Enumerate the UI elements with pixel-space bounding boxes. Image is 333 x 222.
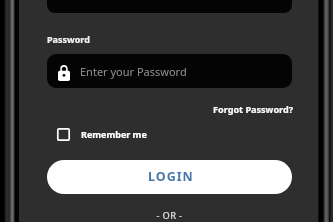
staticText: Password <box>47 33 90 45</box>
button[interactable] <box>47 0 292 13</box>
button[interactable]: Enter your Password <box>47 54 292 88</box>
button[interactable]: Forgot Password? <box>213 103 294 115</box>
staticText: LOGIN <box>148 168 194 185</box>
staticText: Enter your Password <box>80 64 187 79</box>
staticText: Remember me <box>81 128 147 140</box>
button[interactable]: Remember me <box>57 128 146 141</box>
staticText: - OR - <box>20 209 319 222</box>
button[interactable]: LOGIN <box>47 160 292 194</box>
